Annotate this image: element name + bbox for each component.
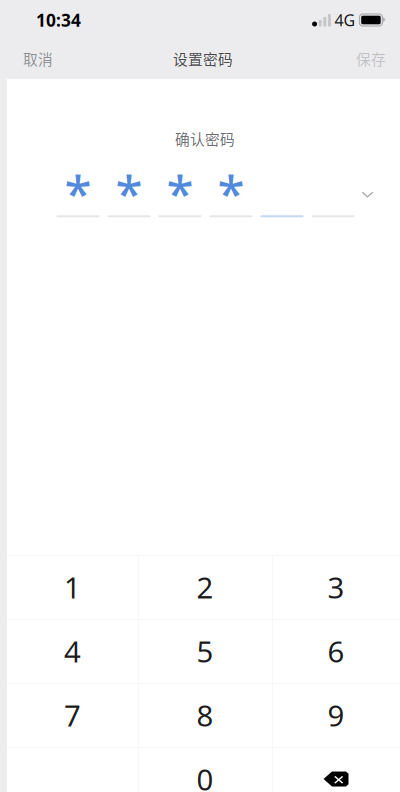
button[interactable] [272, 747, 400, 792]
button[interactable]: 4 [7, 619, 138, 683]
button[interactable]: 保存 [342, 40, 400, 79]
staticText: 5 [196, 631, 213, 670]
staticText: 保存 [356, 48, 386, 69]
staticText: 2 [196, 567, 213, 606]
staticText: 0 [196, 759, 213, 792]
staticText: 6 [327, 631, 344, 670]
staticText: * [166, 159, 193, 225]
button[interactable]: Hide keyboard [354, 183, 381, 206]
staticText: 1 [64, 567, 81, 606]
button[interactable]: 取消 [0, 40, 67, 79]
button[interactable]: 2 [138, 555, 272, 619]
button[interactable]: 1 [7, 555, 138, 619]
staticText: 4G [334, 9, 355, 31]
button[interactable]: 3 [272, 555, 400, 619]
staticText: * [115, 159, 142, 225]
staticText: 4 [64, 631, 81, 670]
staticText: 设置密码 [173, 48, 233, 69]
staticText: 取消 [23, 48, 53, 69]
staticText: 7 [64, 695, 81, 734]
staticText: 3 [327, 567, 344, 606]
staticText: * [64, 159, 91, 225]
staticText: * [217, 159, 244, 225]
button[interactable]: 9 [272, 683, 400, 747]
button[interactable]: 0 [138, 747, 272, 792]
button[interactable]: 5 [138, 619, 272, 683]
staticText: 确认密码 [175, 128, 235, 149]
button[interactable]: 6 [272, 619, 400, 683]
staticText: 8 [196, 695, 213, 734]
staticText: 9 [327, 695, 344, 734]
staticText: 10:34 [36, 8, 81, 31]
button[interactable]: 7 [7, 683, 138, 747]
button[interactable]: 8 [138, 683, 272, 747]
